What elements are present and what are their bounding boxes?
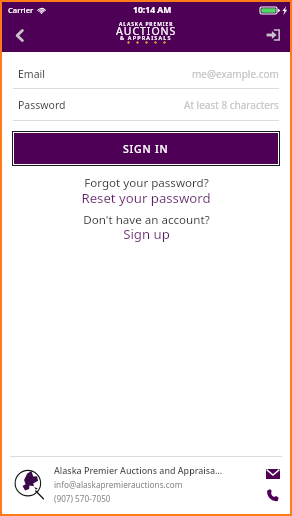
staticText: info@alaskapremierauctions.com <box>54 479 183 490</box>
staticText: & APPRAISALS <box>120 34 172 41</box>
staticText: Email <box>18 67 45 81</box>
button[interactable]: Password <box>2 89 290 121</box>
staticText: Carrier <box>8 5 34 15</box>
button[interactable]: Email <box>2 60 290 89</box>
staticText: At least 8 characters <box>184 98 279 112</box>
staticText: AUCTIONS <box>116 24 177 38</box>
button[interactable]: Email <box>265 466 280 481</box>
button[interactable]: Reset your password <box>81 189 211 207</box>
button[interactable]: Call <box>265 488 280 503</box>
staticText: 10:14 AM <box>133 4 172 16</box>
staticText: Sign up <box>123 225 170 243</box>
staticText: me@example.com <box>192 67 279 81</box>
staticText: Password <box>18 98 66 112</box>
button[interactable]: SIGN IN <box>14 133 278 164</box>
button[interactable]: Back <box>2 18 36 52</box>
button[interactable]: Sign in <box>256 18 290 52</box>
staticText: (907) 570-7050 <box>54 493 111 504</box>
staticText: ALASKA PREMIER <box>119 21 174 28</box>
staticText: Alaska Premier Auctions and Appraisa… <box>54 464 223 476</box>
staticText: SIGN IN <box>123 142 169 156</box>
button[interactable]: Sign up <box>123 225 170 243</box>
staticText: Forgot your password? <box>84 175 209 191</box>
staticText: Reset your password <box>81 189 211 207</box>
staticText: Don't have an account? <box>83 212 210 228</box>
